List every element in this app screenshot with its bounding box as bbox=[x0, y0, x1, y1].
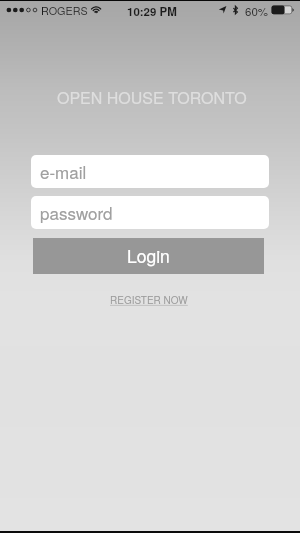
button[interactable]: e-mail bbox=[31, 155, 269, 188]
staticText: password bbox=[40, 200, 113, 224]
staticText: 10:29 PM bbox=[127, 3, 177, 19]
staticText: Login bbox=[127, 243, 170, 268]
staticText: e-mail bbox=[40, 159, 87, 183]
staticText: ROGERS bbox=[41, 3, 88, 18]
staticText: OPEN HOUSE TORONTO bbox=[57, 86, 247, 106]
button[interactable]: password bbox=[31, 196, 269, 229]
button[interactable]: REGISTER NOW bbox=[108, 292, 193, 308]
other: Signal strength bbox=[0, 0, 300, 20]
staticText: REGISTER NOW bbox=[110, 293, 191, 307]
staticText: 60% bbox=[245, 3, 269, 19]
other: Bluetooth bbox=[0, 0, 300, 20]
other: Location bbox=[0, 0, 300, 20]
button[interactable]: Login bbox=[33, 238, 264, 274]
other: Battery 60 percent bbox=[0, 0, 300, 20]
other: Wi-Fi bbox=[0, 0, 300, 20]
